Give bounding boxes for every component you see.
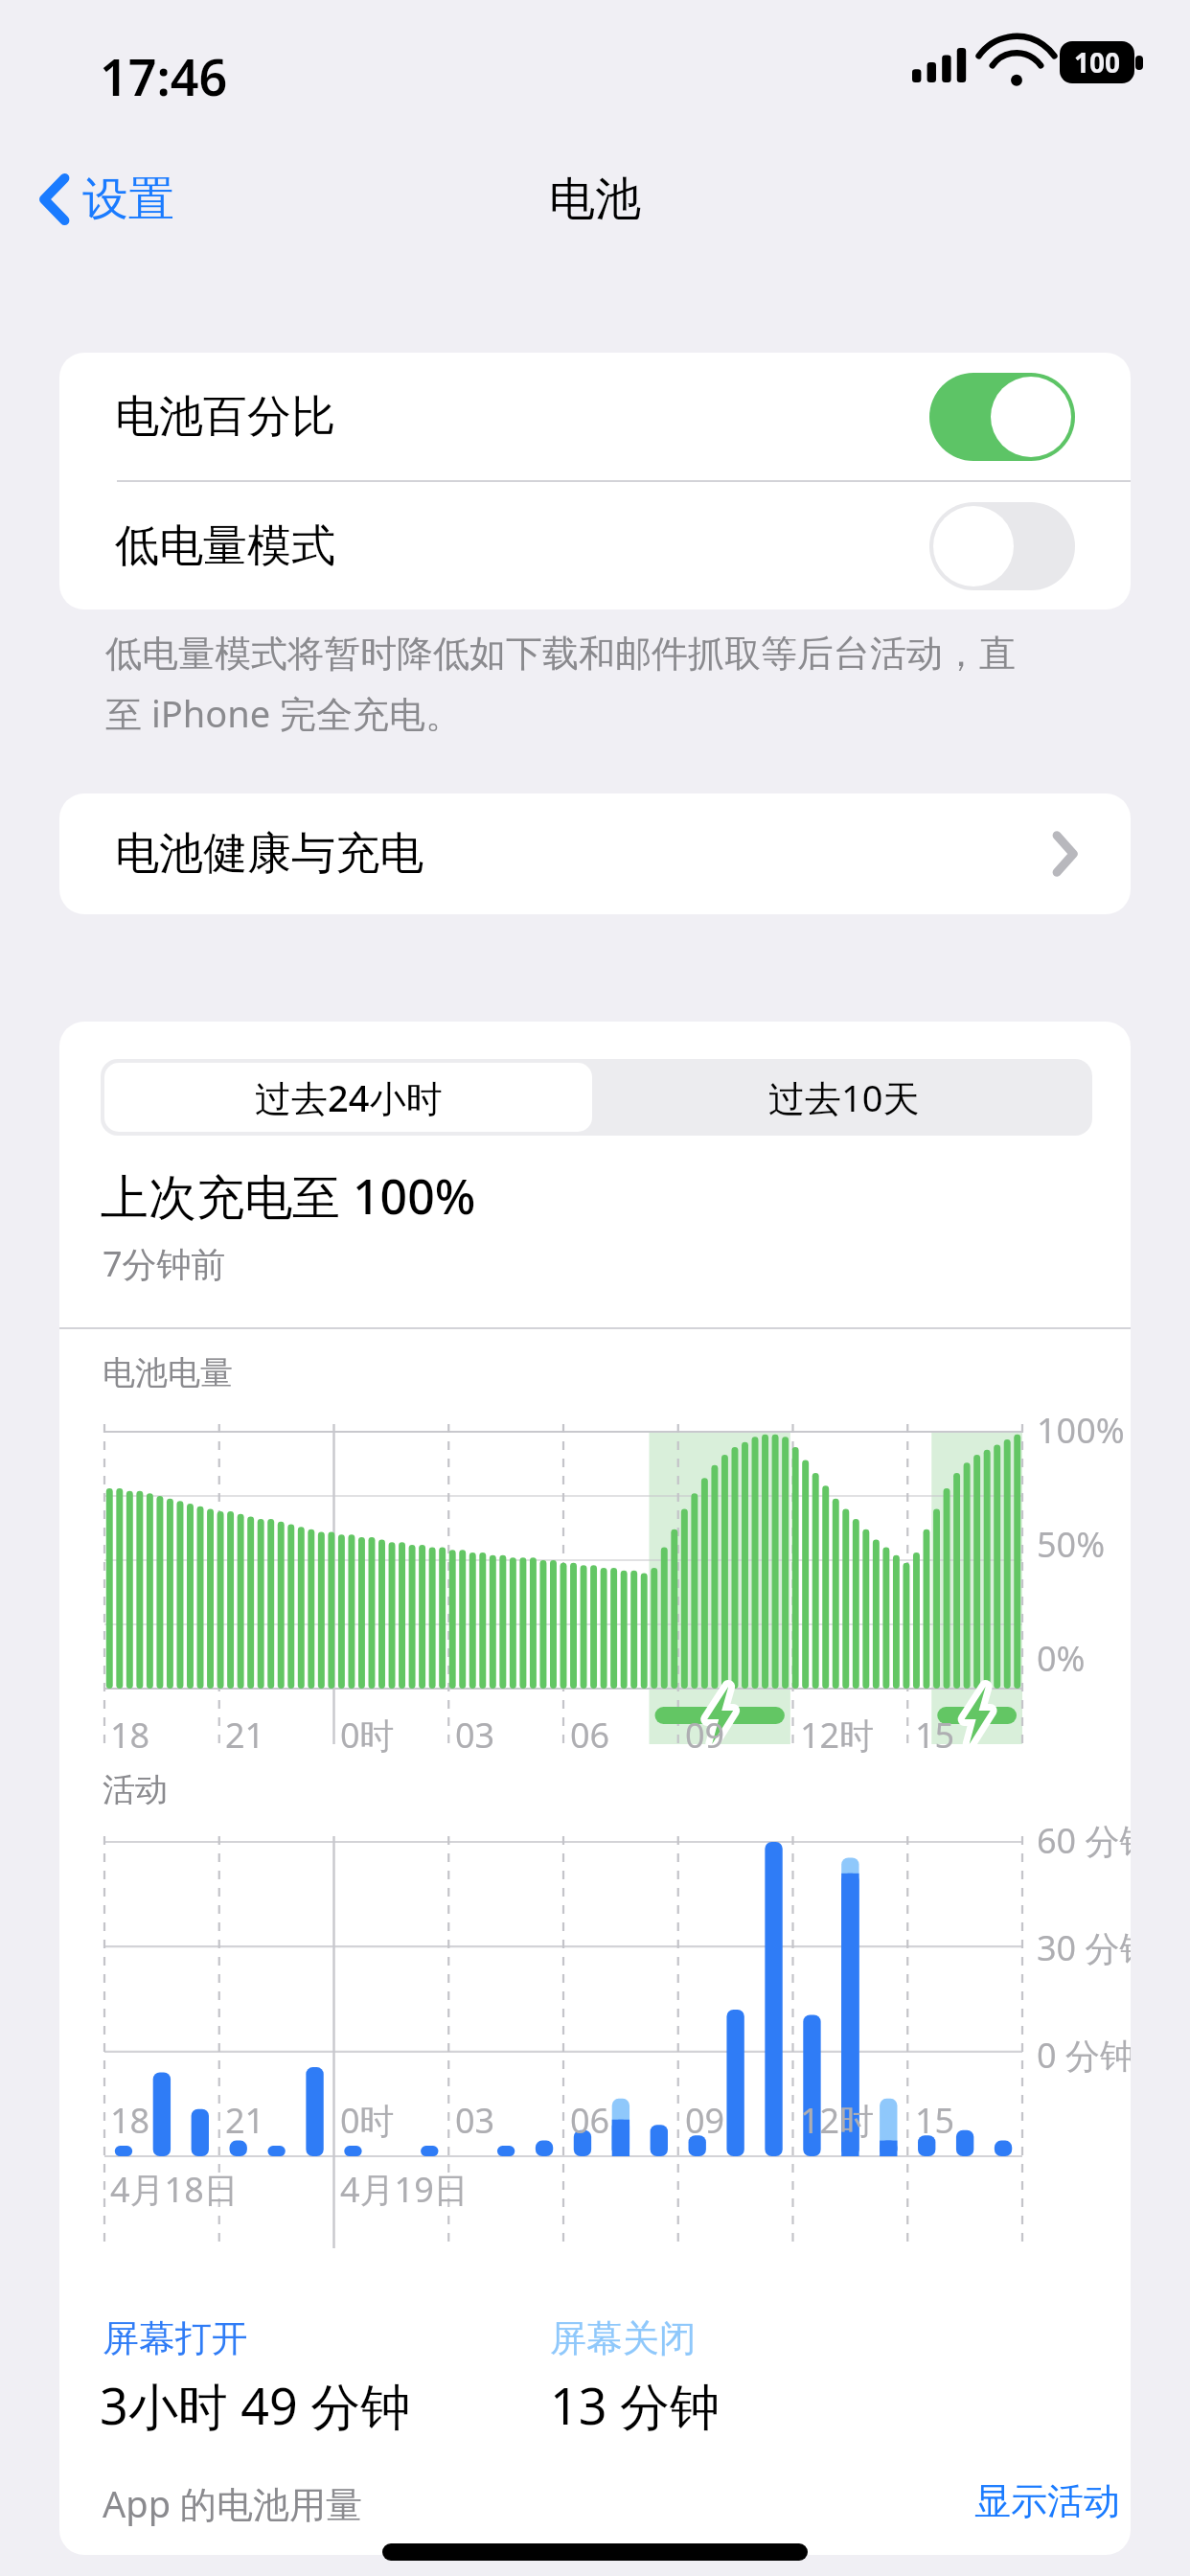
staticText: 09	[685, 1712, 725, 1759]
staticText: 0时	[340, 1712, 395, 1759]
staticText: 屏幕关闭	[550, 2315, 696, 2361]
staticText: 低电量模式将暂时降低如下载和邮件抓取等后台活动，直	[105, 631, 1016, 677]
staticText: 4月18日	[110, 2166, 239, 2213]
staticText: 03	[455, 1712, 495, 1759]
staticText: 屏幕打开	[103, 2315, 248, 2361]
staticText: 15	[915, 2097, 955, 2144]
staticText: 21	[225, 1712, 265, 1759]
staticText: 06	[570, 2097, 610, 2144]
staticText: 设置	[82, 171, 174, 228]
staticText: 低电量模式	[115, 518, 335, 574]
staticText: 06	[570, 1712, 610, 1759]
staticText: 50%	[1037, 1521, 1106, 1568]
button[interactable]: 电池百分比	[59, 353, 1131, 480]
staticText: 4月19日	[340, 2166, 469, 2213]
staticText: 0 分钟	[1037, 2032, 1131, 2079]
staticText: 100	[1074, 44, 1121, 80]
button[interactable]: 过去24小时	[104, 1063, 592, 1132]
other: 电池健康与充电	[1054, 834, 1075, 874]
staticText: 显示活动	[974, 2478, 1120, 2524]
staticText: 18	[110, 1712, 150, 1759]
staticText: 过去24小时	[255, 1072, 443, 1122]
staticText: 09	[685, 2097, 725, 2144]
staticText: 电池电量	[103, 1352, 233, 1393]
button[interactable]: 显示活动	[974, 2478, 1120, 2524]
staticText: 30 分钟	[1037, 1924, 1131, 1971]
staticText: 100%	[1037, 1407, 1125, 1454]
staticText: 03	[455, 2097, 495, 2144]
staticText: 12时	[800, 2097, 875, 2144]
staticText: 21	[225, 2097, 265, 2144]
staticText: 活动	[103, 1769, 168, 1810]
button[interactable]: 电池健康与充电	[59, 793, 1131, 914]
button[interactable]: 过去10天	[596, 1059, 1092, 1136]
staticText: 18	[110, 2097, 150, 2144]
staticText: 电池	[549, 171, 641, 228]
staticText: 60 分钟	[1037, 1817, 1131, 1864]
staticText: 0时	[340, 2097, 395, 2144]
staticText: 7分钟前	[103, 1240, 226, 1287]
staticText: 至 iPhone 完全充电。	[105, 688, 462, 738]
staticText: 电池健康与充电	[115, 826, 423, 882]
staticText: 13 分钟	[550, 2371, 721, 2439]
staticText: 0%	[1037, 1635, 1086, 1682]
staticText: 电池百分比	[115, 389, 335, 445]
staticText: 15	[915, 1712, 955, 1759]
staticText: 上次充电至 100%	[101, 1163, 476, 1229]
button[interactable]: 低电量模式	[59, 482, 1131, 609]
staticText: 过去10天	[768, 1072, 920, 1122]
staticText: 17:46	[100, 42, 228, 110]
button[interactable]: 设置	[33, 159, 184, 240]
staticText: 12时	[800, 1712, 875, 1759]
staticText: App 的电池用量	[103, 2478, 362, 2528]
staticText: 3小时 49 分钟	[100, 2371, 411, 2439]
